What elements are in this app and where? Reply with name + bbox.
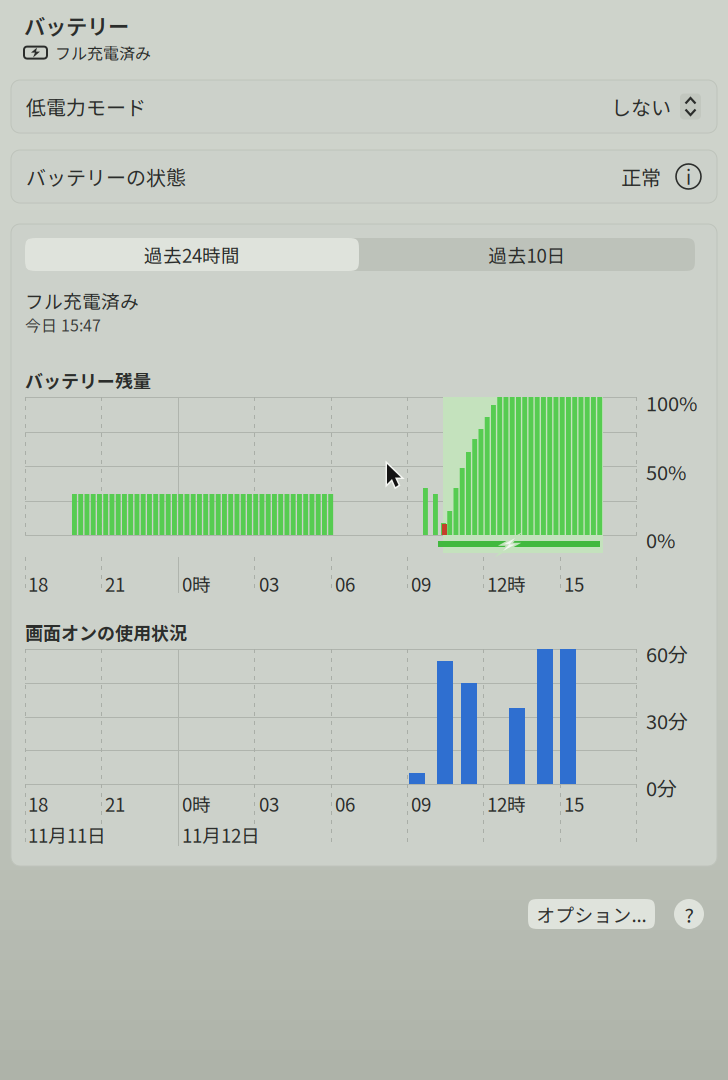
button[interactable]: ヘルプ — [674, 899, 704, 929]
staticText: 画面オンの使用状況 — [25, 619, 187, 645]
staticText: 50% — [646, 457, 686, 486]
staticText: 03 — [259, 570, 279, 597]
staticText: 0時 — [182, 790, 211, 817]
staticText: i — [686, 163, 691, 190]
staticText: 過去10日 — [488, 241, 565, 268]
staticText: バッテリー残量 — [25, 367, 151, 393]
button[interactable]: 過去24時間 — [25, 238, 359, 271]
staticText: 09 — [411, 570, 431, 597]
staticText: 正常 — [621, 162, 661, 191]
staticText: フル充電済み — [55, 41, 151, 64]
button[interactable]: 過去10日 — [359, 238, 695, 271]
staticText: 12時 — [487, 570, 526, 597]
staticText: 0分 — [646, 773, 677, 802]
staticText: ? — [684, 899, 693, 928]
staticText: 06 — [335, 570, 355, 597]
staticText: 21 — [105, 790, 125, 817]
staticText: 06 — [335, 790, 355, 817]
staticText: 100% — [646, 388, 697, 417]
staticText: 15 — [564, 790, 584, 817]
staticText: 11月11日 — [28, 821, 106, 848]
staticText: 15 — [564, 570, 584, 597]
staticText: 12時 — [487, 790, 526, 817]
button[interactable]: 低電力モード — [11, 80, 717, 133]
staticText: 09 — [411, 790, 431, 817]
staticText: 過去24時間 — [144, 241, 240, 268]
button[interactable]: バッテリーの状態 — [11, 150, 717, 203]
staticText: 11月12日 — [182, 821, 260, 848]
staticText: しない — [611, 92, 671, 121]
staticText: 60分 — [646, 639, 688, 668]
staticText: フル充電済み — [25, 287, 139, 314]
staticText: 0時 — [182, 570, 211, 597]
staticText: バッテリー — [24, 10, 129, 41]
staticText: 18 — [28, 790, 48, 817]
staticText: 0% — [646, 525, 675, 554]
staticText: バッテリーの状態 — [26, 162, 186, 191]
staticText: 03 — [259, 790, 279, 817]
staticText: 30分 — [646, 706, 688, 735]
staticText: オプション... — [536, 900, 646, 927]
staticText: 18 — [28, 570, 48, 597]
staticText: 今日 15:47 — [25, 313, 101, 336]
button[interactable]: オプション... — [528, 899, 655, 929]
staticText: 21 — [105, 570, 125, 597]
staticText: 低電力モード — [26, 92, 146, 121]
